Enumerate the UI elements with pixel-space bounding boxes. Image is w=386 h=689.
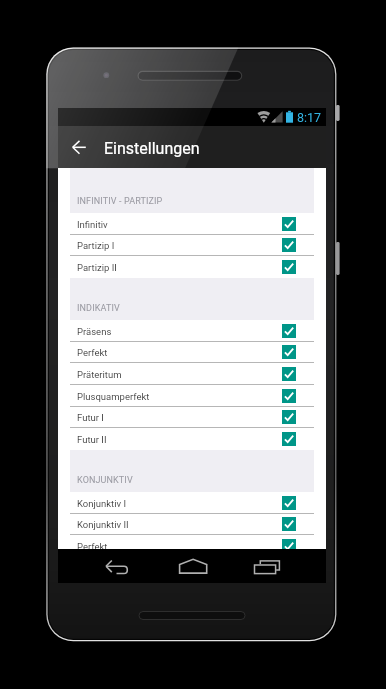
button[interactable]: Partizip I (58, 234, 326, 256)
staticText: Plusquamperfekt (77, 563, 150, 574)
button[interactable]: Plusquamperfekt (58, 385, 326, 407)
button[interactable]: Konjunktiv II (58, 513, 326, 535)
staticText: INDIKATIV (77, 303, 120, 314)
staticText: Futur II (77, 434, 107, 445)
staticText: Plusquamperfekt (77, 391, 150, 402)
staticText: Präteritum (77, 369, 122, 380)
staticText: Perfekt (77, 347, 108, 358)
button[interactable]: Übersicht (251, 549, 283, 583)
button[interactable]: Konjunktiv I (58, 492, 326, 514)
staticText: Präsens (77, 326, 112, 337)
staticText: Partizip I (77, 240, 115, 251)
button[interactable]: Futur I (58, 406, 326, 428)
button[interactable]: Partizip II (58, 256, 326, 278)
staticText: KONJUNKTIV (77, 475, 133, 486)
staticText: Partizip II (77, 262, 117, 273)
staticText: Konjunktiv II (77, 519, 129, 530)
button[interactable]: Perfekt (58, 535, 326, 557)
button[interactable]: Infinitiv (58, 213, 326, 235)
button[interactable]: Präteritum (58, 363, 326, 385)
button[interactable]: Startseite (175, 549, 209, 583)
staticText: Infinitiv (77, 219, 108, 230)
button[interactable]: Futur II (58, 428, 326, 450)
staticText: 8:17 (297, 110, 322, 125)
staticText: INFINITIV - PARTIZIP (77, 196, 163, 207)
button[interactable]: Präsens (58, 320, 326, 342)
staticText: Perfekt (77, 541, 108, 552)
staticText: Futur I (77, 412, 104, 423)
staticText: Einstellungen (104, 139, 200, 158)
button[interactable]: Zurück (70, 136, 92, 158)
button[interactable]: Perfekt (58, 341, 326, 363)
button[interactable]: Zurück (102, 549, 140, 583)
button[interactable]: Plusquamperfekt (58, 557, 326, 579)
staticText: Konjunktiv I (77, 498, 127, 509)
